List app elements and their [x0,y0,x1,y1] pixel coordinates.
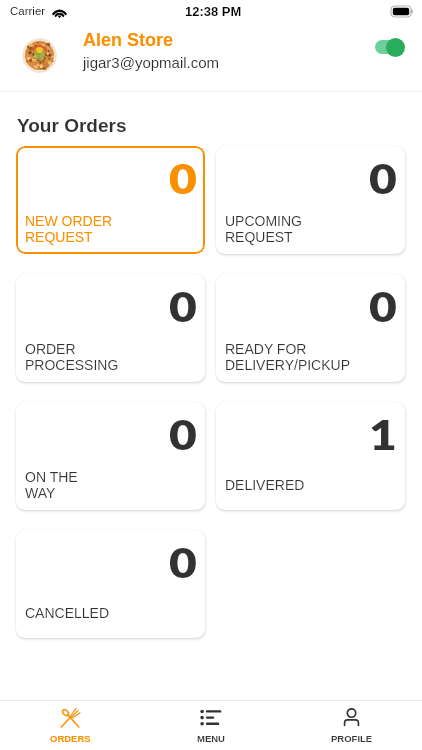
staticText: ORDERS [50,733,91,744]
staticText: 1 [369,410,397,459]
staticText: Carrier [10,5,46,18]
staticText: READY FOR DELIVERY/PICKUP [225,341,351,373]
staticText: 12:38 PM [185,4,242,19]
staticText: Alen Store [83,30,174,50]
staticText: 0 [169,410,197,459]
button[interactable]: PROFILE [281,701,422,750]
staticText: ON THE WAY [25,469,78,501]
button[interactable]: 0 [216,146,405,254]
button[interactable]: 0 [16,274,205,382]
staticText: 0 [369,282,397,331]
staticText: CANCELLED [25,605,110,621]
button[interactable]: MENU [140,701,281,750]
staticText: 0 [169,154,197,203]
button[interactable]: 1 [216,402,405,510]
staticText: 0 [369,154,397,203]
staticText: NEW ORDER REQUEST [25,213,113,245]
staticText: 0 [169,538,197,587]
button[interactable]: Store open toggle [375,36,405,58]
staticText: PROFILE [331,733,373,744]
button[interactable]: 0 [16,530,205,638]
button[interactable]: 0 [16,402,205,510]
button[interactable]: 0 [216,274,405,382]
button[interactable]: ORDERS [0,701,140,750]
staticText: Your Orders [17,115,127,136]
staticText: DELIVERED [225,477,305,493]
button[interactable] [22,38,57,73]
staticText: 0 [169,282,197,331]
staticText: UPCOMING REQUEST [225,213,302,245]
staticText: jigar3@yopmail.com [83,54,220,71]
staticText: ORDER PROCESSING [25,341,119,373]
button[interactable]: 0 [16,146,205,254]
staticText: MENU [197,733,225,744]
